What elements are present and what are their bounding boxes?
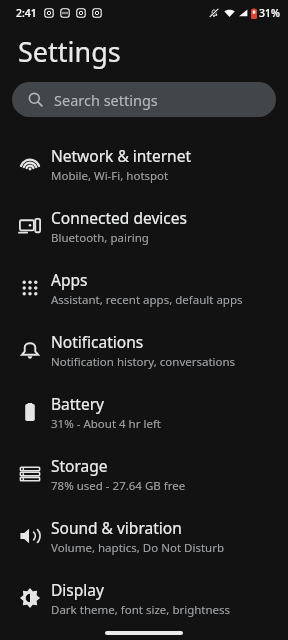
- button[interactable]: Sound & vibration: [0, 505, 288, 567]
- button[interactable]: Storage: [0, 443, 288, 505]
- staticText: Assistant, recent apps, default apps: [51, 292, 243, 308]
- staticText: Mobile, Wi-Fi, hotspot: [51, 168, 169, 184]
- staticText: Dark theme, font size, brightness: [51, 602, 231, 618]
- staticText: 31%: [259, 6, 280, 20]
- staticText: Bluetooth, pairing: [51, 230, 149, 246]
- staticText: Sound & vibration: [51, 517, 182, 538]
- staticText: Display: [51, 579, 104, 600]
- staticText: 31% - About 4 hr left: [51, 416, 161, 432]
- button[interactable]: Connected devices: [0, 195, 288, 257]
- button[interactable]: Search settings: [12, 82, 276, 117]
- staticText: Apps: [51, 269, 88, 290]
- button[interactable]: Network & internet: [0, 133, 288, 195]
- staticText: 2:41: [16, 6, 37, 20]
- staticText: Storage: [51, 455, 108, 476]
- button[interactable]: Display: [0, 567, 288, 629]
- staticText: Notification history, conversations: [51, 354, 236, 370]
- staticText: Search settings: [54, 90, 158, 110]
- staticText: Notifications: [51, 331, 144, 352]
- button[interactable]: Apps: [0, 257, 288, 319]
- button[interactable]: Battery: [0, 381, 288, 443]
- staticText: Battery: [51, 393, 105, 414]
- staticText: Network & internet: [51, 145, 191, 166]
- staticText: Volume, haptics, Do Not Disturb: [51, 540, 224, 556]
- staticText: Settings: [18, 33, 121, 70]
- staticText: Connected devices: [51, 207, 187, 228]
- staticText: 78% used - 27.64 GB free: [51, 478, 186, 494]
- button[interactable]: Notifications: [0, 319, 288, 381]
